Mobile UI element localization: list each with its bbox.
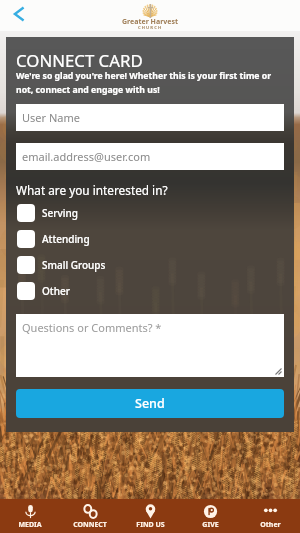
button[interactable]: Questions or Comments? * — [16, 314, 284, 377]
button[interactable]: User Name — [16, 104, 284, 131]
button[interactable]: CONNECT — [60, 499, 120, 533]
button[interactable]: Send — [16, 389, 284, 418]
button[interactable]: Other — [240, 499, 300, 533]
button[interactable]: email.address@user.com — [16, 143, 284, 170]
button[interactable]: Serving — [16, 204, 284, 222]
staticText: email.address@user.com — [22, 149, 151, 164]
staticText: CONNECT — [73, 520, 107, 530]
staticText: User Name — [22, 110, 80, 125]
staticText: FIND US — [136, 520, 165, 530]
button[interactable]: FIND US — [120, 499, 180, 533]
button[interactable]: Small Groups — [16, 256, 284, 274]
staticText: Serving — [42, 206, 78, 220]
staticText: MEDIA — [18, 520, 42, 530]
button[interactable]: GIVE — [180, 499, 240, 533]
button[interactable]: MEDIA — [0, 499, 60, 533]
button[interactable]: Attending — [16, 230, 284, 248]
staticText: C H U R C H — [138, 25, 162, 31]
button[interactable]: Back — [7, 3, 29, 25]
staticText: Other — [260, 520, 281, 530]
staticText: CONNECT CARD — [16, 49, 143, 72]
button[interactable]: Other — [16, 282, 284, 300]
staticText: GIVE — [202, 520, 219, 530]
staticText: Other — [42, 284, 70, 298]
staticText: Questions or Comments? * — [22, 320, 162, 335]
staticText: Send — [135, 395, 165, 412]
staticText: Greater Harvest — [122, 17, 178, 27]
staticText: Attending — [42, 232, 90, 246]
staticText: What are you interested in? — [16, 182, 168, 198]
staticText: We're so glad you're here! Whether this … — [16, 70, 272, 95]
staticText: Small Groups — [42, 258, 106, 272]
